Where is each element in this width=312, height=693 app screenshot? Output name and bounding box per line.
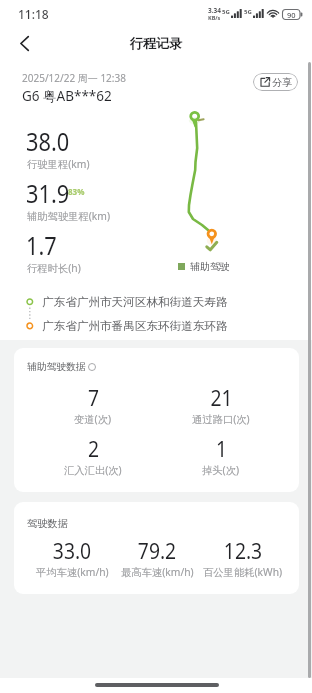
staticText: 广东省广州市番禺区东环街道东环路	[42, 319, 228, 334]
staticText: 2025/12/22 周一 12:38	[22, 71, 126, 85]
staticText: 31.9	[26, 177, 70, 210]
staticText: 辅助驾驶里程(km)	[27, 209, 111, 223]
staticText: 3.34	[208, 6, 221, 15]
staticText: 行驶里程(km)	[27, 157, 90, 171]
staticText: 汇入汇出(次)	[64, 463, 122, 477]
staticText: 33.0	[53, 537, 91, 566]
staticText: 百公里能耗(kWh)	[203, 565, 283, 579]
staticText: 行程记录	[130, 35, 182, 51]
staticText: 38.0	[26, 125, 70, 158]
button[interactable]: 返回	[10, 29, 38, 57]
staticText: 5G	[244, 8, 252, 16]
staticText: 驾驶数据	[27, 517, 68, 530]
staticText: 掉头(次)	[202, 463, 240, 477]
staticText: 变道(次)	[74, 412, 112, 426]
staticText: 83%	[68, 186, 85, 197]
staticText: 最高车速(km/h)	[121, 565, 194, 579]
staticText: 5G	[222, 8, 230, 16]
staticText: 辅助驾驶	[190, 260, 230, 273]
staticText: 12.3	[224, 537, 262, 566]
staticText: 辅助驾驶数据	[27, 361, 86, 373]
button[interactable]: 分享	[253, 73, 298, 91]
staticText: 90	[287, 10, 296, 20]
staticText: 1	[215, 435, 227, 464]
staticText: 7	[87, 384, 99, 413]
staticText: 行程时长(h)	[27, 261, 81, 275]
staticText: G6 粤AB***62	[22, 87, 112, 105]
staticText: 79.2	[138, 537, 176, 566]
staticText: 通过路口(次)	[192, 412, 250, 426]
staticText: 2	[87, 435, 99, 464]
staticText: 平均车速(km/h)	[36, 565, 109, 579]
staticText: KB/s	[208, 14, 221, 21]
staticText: 11:18	[18, 6, 49, 22]
staticText: 1.7	[26, 229, 57, 262]
staticText: 分享	[272, 76, 292, 89]
staticText: 21	[210, 384, 233, 413]
staticText: 广东省广州市天河区林和街道天寿路	[42, 295, 228, 310]
